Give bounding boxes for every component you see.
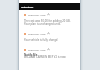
staticText: Snapchat · now <box>28 48 46 51</box>
staticText: WILLIAM CARMEN MEF V2 is now <box>24 55 66 59</box>
staticText: Notify Me <box>24 53 38 57</box>
staticText: Snapchat · now <box>28 32 46 35</box>
staticText: Notifications <box>21 6 34 9</box>
other: Collapse <box>47 48 50 51</box>
other: Collapse <box>47 13 50 16</box>
button[interactable]: Snapchat · now <box>24 32 50 35</box>
button[interactable]: Snapchat · now <box>24 48 50 51</box>
other: Collapse <box>47 32 50 35</box>
button[interactable]: Snapchat · now <box>24 13 50 16</box>
button[interactable]: Notifications <box>19 3 80 10</box>
staticText: The cost was 50.00 for adding 20 GB. <box>24 19 71 23</box>
staticText: Snapchat · now <box>28 13 46 16</box>
staticText: Your vehicle is fully chargd <box>24 38 58 42</box>
staticText: Your plan is unchanged until. <box>24 22 61 26</box>
